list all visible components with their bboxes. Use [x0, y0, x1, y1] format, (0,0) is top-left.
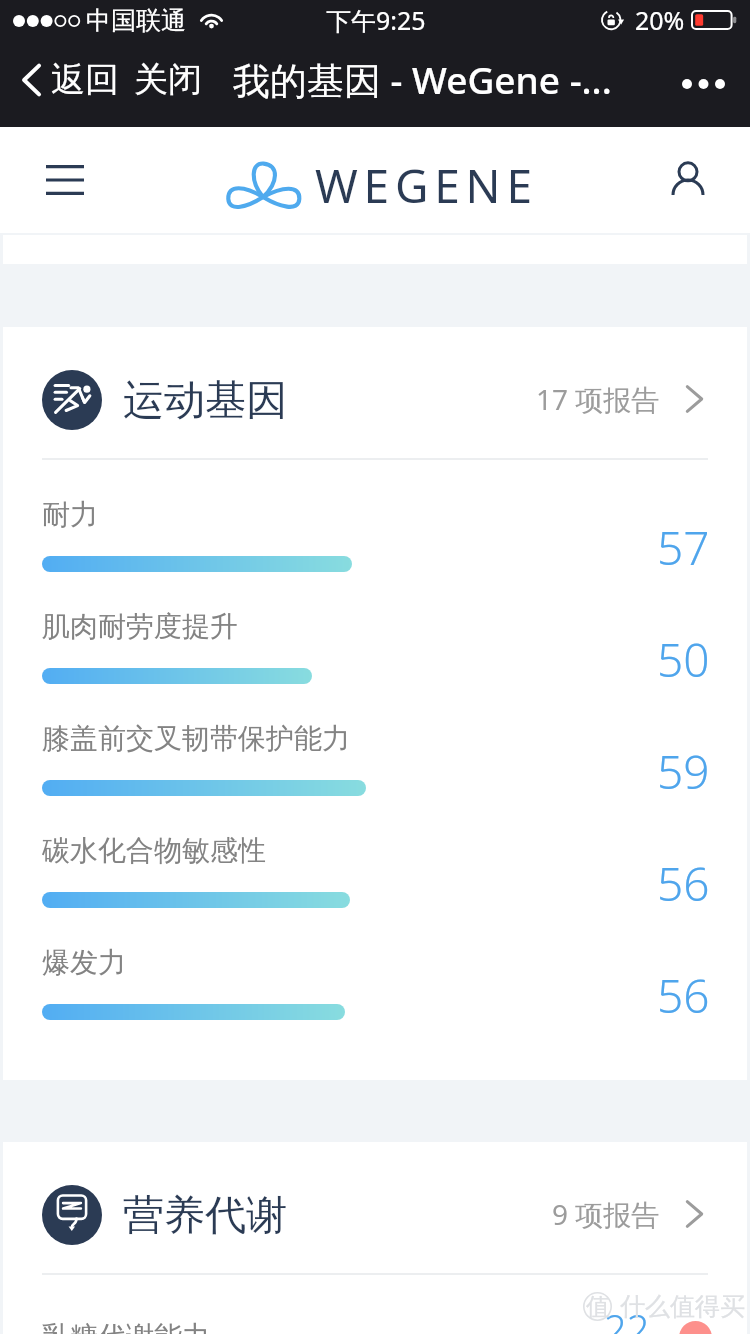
button[interactable]: 返回	[0, 52, 121, 107]
staticText: 17 项报告	[536, 380, 660, 418]
staticText: 耐力	[42, 497, 98, 532]
staticText: 什么值得买	[620, 1291, 745, 1322]
button[interactable]: 乳糖代谢能力	[3, 1275, 747, 1334]
staticText: 爆发力	[42, 945, 126, 980]
button[interactable]: 耐力	[3, 460, 747, 572]
staticText: 关闭	[134, 58, 202, 101]
staticText: 57	[657, 516, 710, 579]
staticText: 碳水化合物敏感性	[42, 833, 266, 868]
button[interactable]: 爆发力	[3, 908, 747, 1020]
staticText: 乳糖代谢能力	[42, 1319, 210, 1334]
staticText: 56	[657, 852, 710, 915]
button[interactable]: 营养代谢	[3, 1142, 747, 1273]
staticText: 营养代谢	[123, 1190, 287, 1242]
staticText: 膝盖前交叉韧带保护能力	[42, 721, 350, 756]
button[interactable]: 碳水化合物敏感性	[3, 796, 747, 908]
staticText: 肌肉耐劳度提升	[42, 609, 238, 644]
staticText: 中国联通	[86, 5, 186, 36]
button[interactable]: 膝盖前交叉韧带保护能力	[3, 684, 747, 796]
staticText: 返回	[51, 58, 119, 101]
button[interactable]: More options	[660, 68, 750, 100]
staticText: 22	[604, 1301, 650, 1334]
staticText: 59	[657, 740, 710, 803]
button[interactable]: Menu	[0, 147, 108, 213]
button[interactable]: 肌肉耐劳度提升	[3, 572, 747, 684]
staticText: 值	[586, 1292, 610, 1322]
staticText: 我的基因 - WeGene -...	[233, 54, 612, 105]
staticText: 运动基因	[123, 375, 287, 427]
staticText: 下午9:25	[326, 3, 426, 37]
button[interactable]: Account	[649, 146, 750, 214]
staticText: WEGENE	[315, 154, 538, 217]
staticText: 50	[657, 628, 710, 691]
button[interactable]: 关闭	[121, 52, 215, 107]
button[interactable]: 运动基因	[3, 327, 747, 458]
staticText: 20%	[635, 3, 685, 37]
staticText: 56	[657, 964, 710, 1027]
staticText: 9 项报告	[552, 1195, 660, 1233]
